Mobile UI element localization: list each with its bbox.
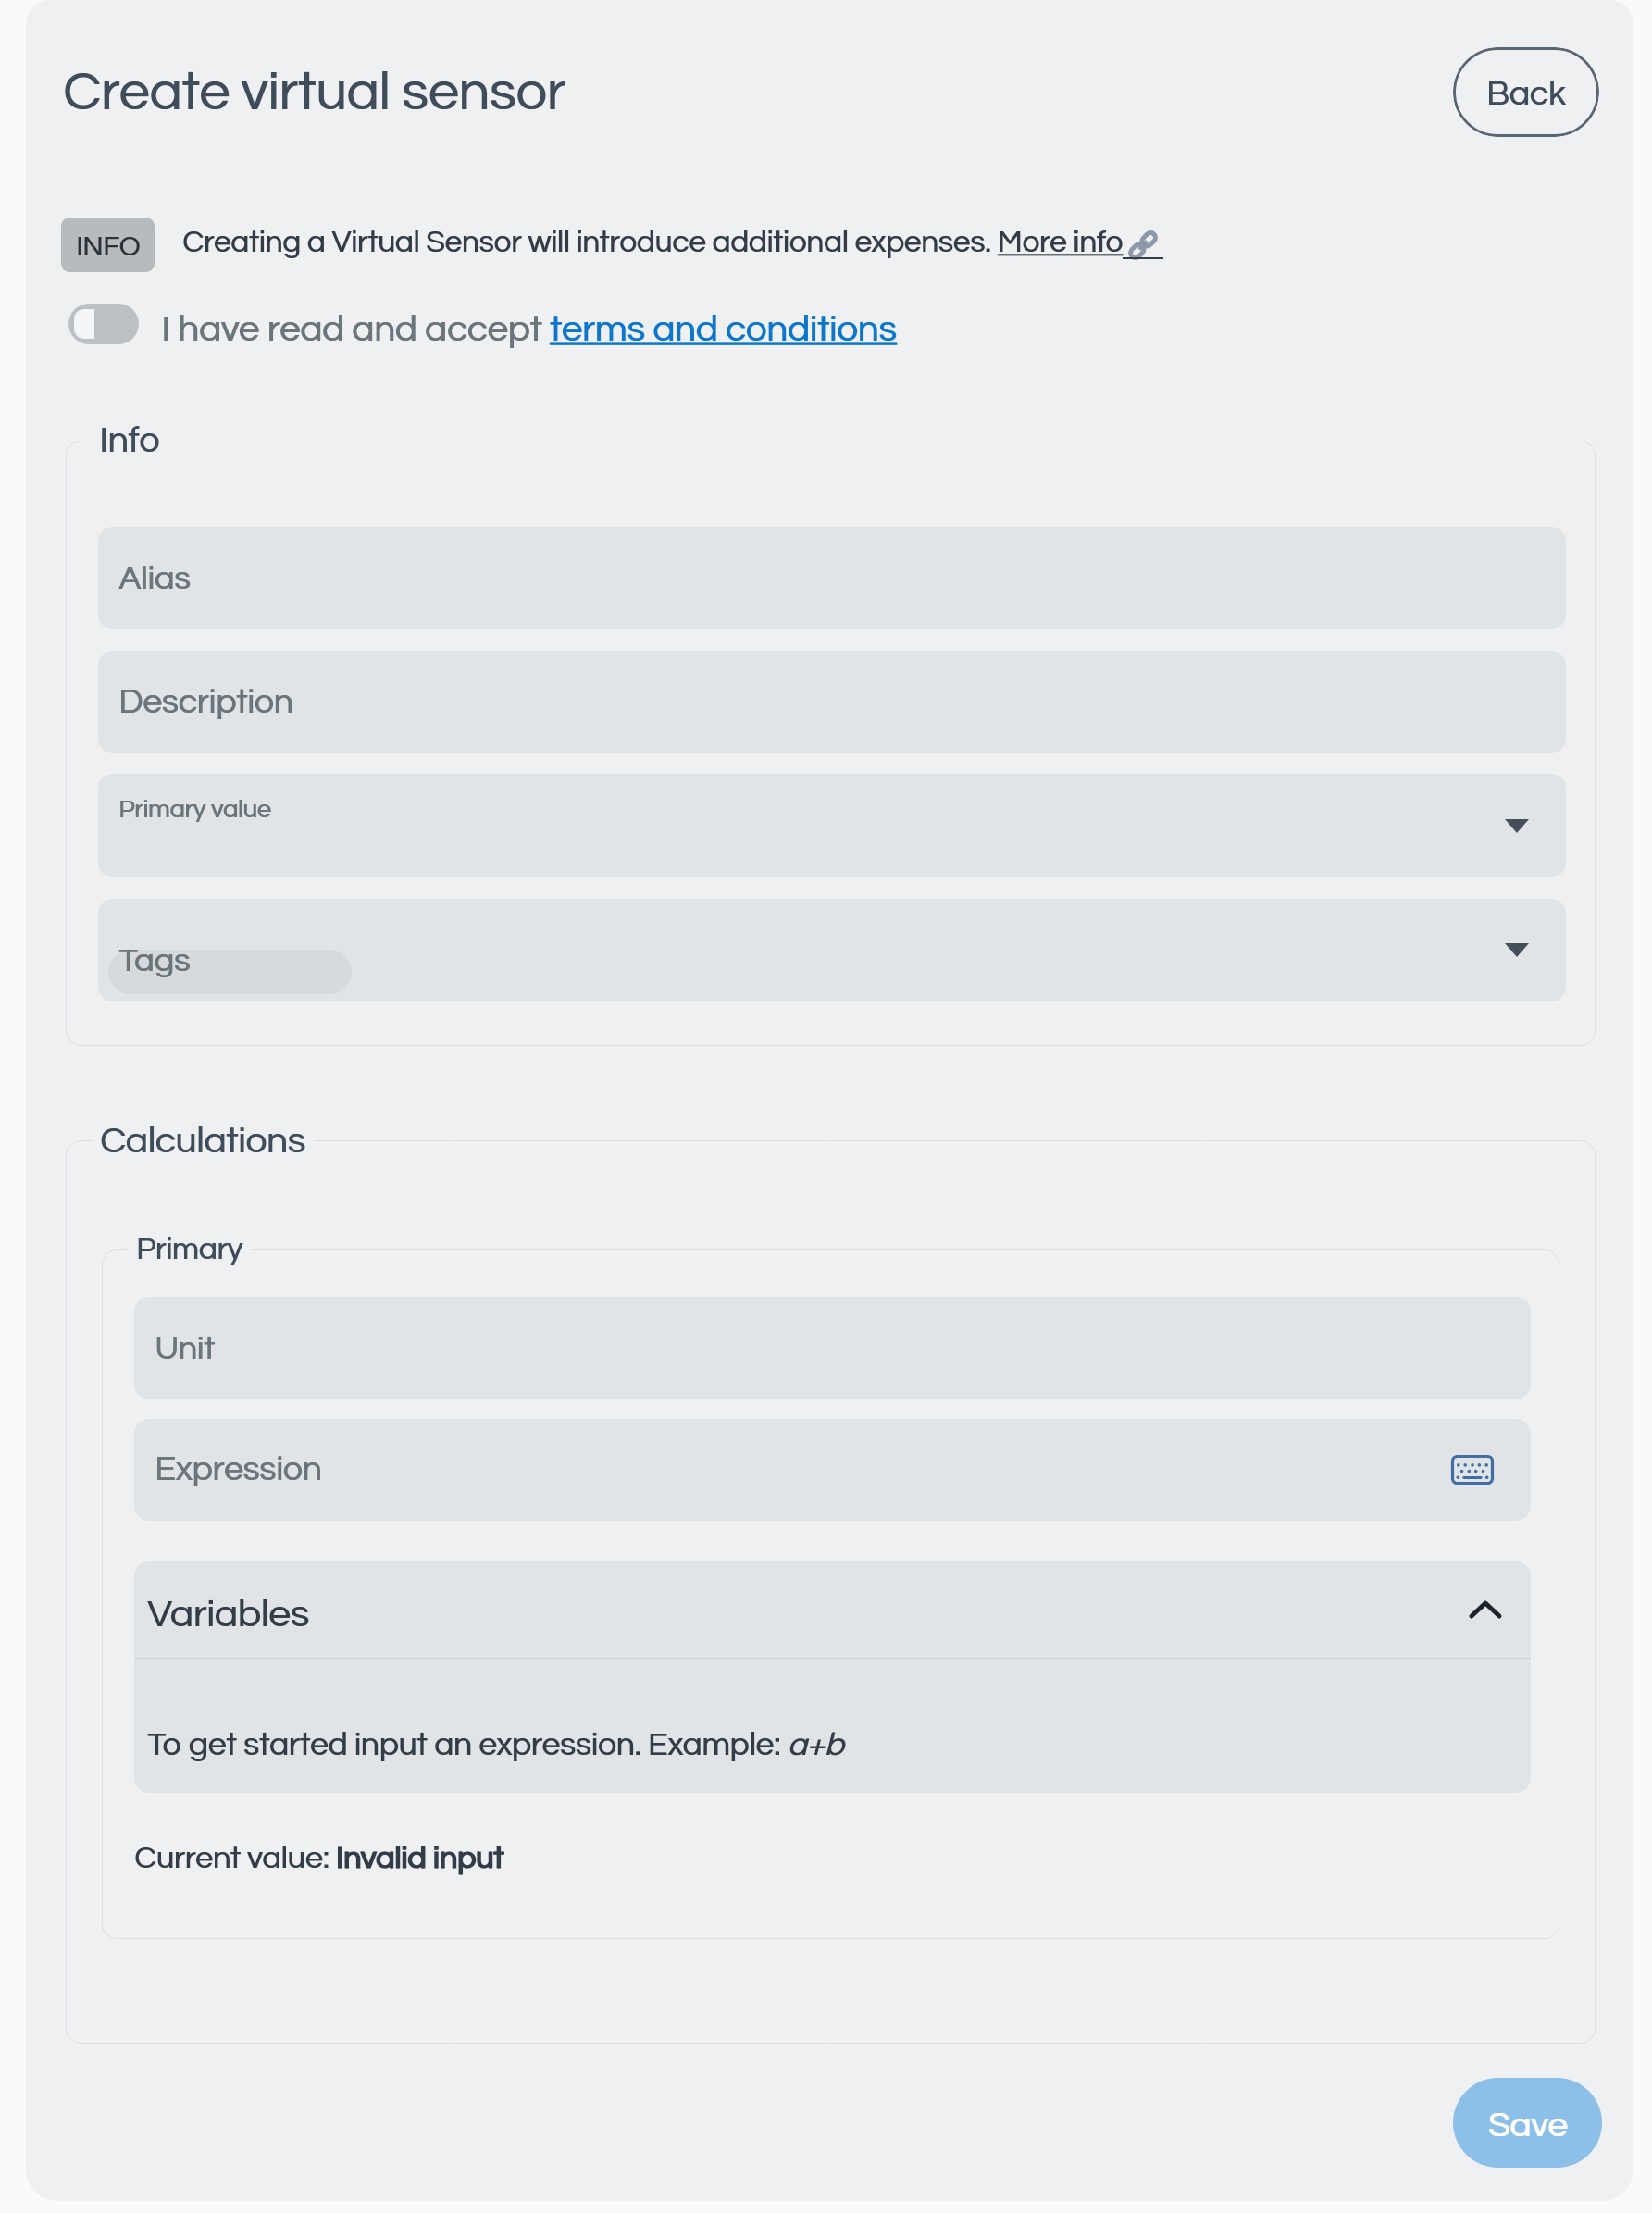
staticText: I have read and accept terms and conditi…: [161, 310, 897, 348]
staticText: Primary value: [118, 797, 271, 823]
staticText: Creating a Virtual Sensor will introduce…: [182, 227, 1123, 258]
staticText: Create virtual sensor: [64, 65, 566, 121]
button[interactable]: Variables: [134, 1561, 1531, 1658]
staticText: Variables: [147, 1595, 309, 1635]
staticText: I have read and accept terms and conditi…: [162, 310, 898, 348]
button[interactable]: Accept terms and conditions: [68, 304, 139, 344]
button[interactable]: Primary value: [98, 774, 1566, 877]
staticText: Current value: Invalid input: [135, 1842, 505, 1874]
staticText: Calculations: [101, 1122, 306, 1160]
staticText: To get started input an expression. Exam…: [147, 1728, 844, 1761]
staticText: Unit: [155, 1331, 215, 1365]
staticText: To get started input an expression. Exam…: [148, 1728, 845, 1761]
button[interactable]: Save: [1453, 2078, 1602, 2168]
button[interactable]: Description: [98, 651, 1566, 753]
staticText: Calculations: [100, 1122, 305, 1160]
staticText: Back: [1486, 77, 1566, 112]
button[interactable]: Back: [1453, 47, 1599, 137]
staticText: Creating a Virtual Sensor will introduce…: [183, 227, 1124, 258]
staticText: Info: [100, 422, 160, 459]
staticText: Back: [1487, 77, 1567, 112]
staticText: Description: [119, 685, 294, 720]
staticText: Primary: [136, 1234, 242, 1265]
staticText: Create virtual sensor: [63, 65, 565, 121]
staticText: Save: [1489, 2107, 1569, 2144]
staticText: Expression: [155, 1452, 322, 1487]
staticText: INFO: [76, 232, 141, 261]
button[interactable]: I have read and accept terms and conditi…: [161, 310, 897, 348]
staticText: Expression: [155, 1452, 323, 1487]
button[interactable]: Unit: [134, 1297, 1531, 1399]
staticText: Unit: [155, 1331, 216, 1365]
staticText: Save: [1488, 2107, 1568, 2144]
staticText: Alias: [118, 561, 191, 595]
staticText: Info: [99, 422, 159, 459]
staticText: Variables: [148, 1595, 310, 1635]
staticText: Current value: Invalid input: [134, 1842, 504, 1874]
button[interactable]: Alias: [98, 527, 1566, 629]
staticText: INFO: [77, 232, 142, 261]
staticText: Primary: [137, 1234, 243, 1265]
staticText: Description: [118, 685, 293, 720]
staticText: Tags: [118, 943, 191, 977]
staticText: Alias: [119, 561, 192, 595]
staticText: Tags: [119, 943, 192, 977]
staticText: Primary value: [119, 797, 272, 823]
button[interactable]: Expression: [134, 1419, 1531, 1521]
button[interactable]: Tags: [98, 899, 1566, 1001]
